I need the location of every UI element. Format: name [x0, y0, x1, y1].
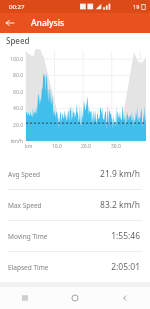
staticText: 10.0: [52, 143, 62, 150]
staticText: Analysis: [31, 17, 65, 29]
staticText: 80.0: [0, 72, 23, 79]
staticText: 2:05:01: [111, 261, 140, 273]
staticText: 00:27: [9, 3, 25, 11]
button[interactable]: Avg Speed: [0, 159, 150, 190]
staticText: 20.0: [81, 143, 91, 150]
staticText: 19: [133, 3, 140, 10]
staticText: Moving Time: [8, 232, 48, 241]
staticText: 83.2 km/h: [100, 199, 140, 211]
button[interactable]: Max Speed: [0, 190, 150, 221]
button[interactable]: Back: [0, 13, 20, 33]
staticText: 30.0: [111, 143, 121, 150]
staticText: km: [25, 143, 33, 150]
staticText: 60.0: [0, 89, 23, 96]
button[interactable]: Elapsed Time: [0, 252, 150, 282]
staticText: Max Speed: [8, 201, 42, 210]
staticText: 1:55:46: [111, 230, 140, 242]
staticText: Avg Speed: [8, 170, 41, 179]
staticText: km/h: [0, 138, 23, 145]
button[interactable]: Back: [100, 287, 150, 309]
staticText: 100.0: [0, 56, 23, 63]
staticText: Elapsed Time: [8, 263, 49, 272]
button[interactable]: Home: [50, 287, 100, 309]
staticText: 21.9 km/h: [100, 168, 140, 180]
button[interactable]: Moving Time: [0, 221, 150, 252]
staticText: Speed: [6, 35, 30, 46]
button[interactable]: Recent apps: [0, 287, 50, 309]
staticText: 40.0: [0, 105, 23, 112]
staticText: 20.0: [0, 122, 23, 129]
